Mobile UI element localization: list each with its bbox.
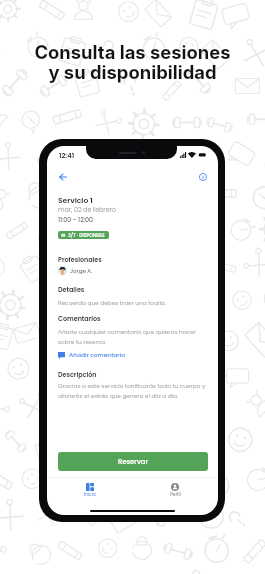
- button[interactable]: Back: [56, 170, 70, 184]
- staticText: 11:00 - 12:00: [58, 215, 93, 224]
- staticText: Jorge A.: [70, 267, 93, 275]
- staticText: 3/7 · DISPONIBLE: [68, 232, 105, 238]
- button[interactable]: Inicio: [47, 483, 132, 497]
- staticText: Recuerda que debes traer una toalla.: [58, 299, 166, 307]
- staticText: Añade cualquier comentario que quieras h…: [58, 328, 208, 346]
- staticText: mar, 02 de febrero: [58, 205, 116, 214]
- button[interactable]: Añadir comentario: [58, 351, 125, 359]
- staticText: Descripción: [58, 370, 97, 379]
- staticText: 12:41: [59, 151, 75, 161]
- staticText: Consulta las sesiones y su disponibilida…: [34, 41, 231, 84]
- staticText: Profesionales: [58, 255, 102, 264]
- staticText: Reservar: [118, 457, 149, 467]
- button[interactable]: Perfil: [132, 483, 218, 497]
- staticText: Gracias a este servicio tonificarás todo…: [58, 382, 208, 400]
- button[interactable]: Reservar: [58, 452, 208, 471]
- staticText: Servicio 1: [58, 195, 93, 205]
- staticText: Detalles: [58, 285, 85, 294]
- staticText: Comentarios: [58, 314, 101, 323]
- button[interactable]: Jorge A.: [58, 266, 93, 275]
- button[interactable]: Information: [196, 170, 210, 184]
- staticText: Añadir comentario: [69, 351, 125, 359]
- button[interactable]: 3/7 · DISPONIBLE: [61, 231, 105, 239]
- staticText: Perfil: [170, 491, 181, 497]
- staticText: Inicio: [84, 491, 96, 497]
